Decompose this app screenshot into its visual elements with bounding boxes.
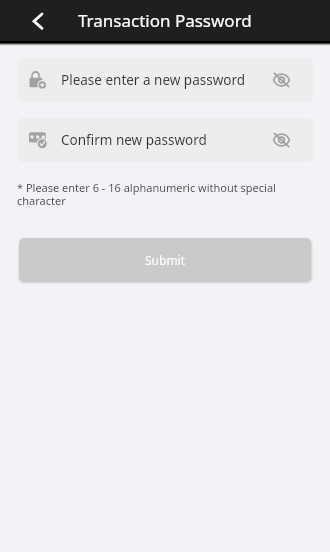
staticText: Transaction Password (78, 9, 252, 32)
staticText: Please enter a new password (61, 71, 246, 89)
staticText: Confirm new password (61, 131, 207, 149)
button[interactable]: Submit (19, 238, 311, 282)
button[interactable]: Show confirmed password (259, 118, 303, 162)
button[interactable]: Confirm new password (17, 118, 313, 162)
button[interactable]: Please enter a new password (17, 58, 313, 102)
button[interactable]: Show new password (259, 58, 303, 102)
button[interactable]: Back (0, 0, 56, 41)
staticText: * Please enter 6 - 16 alphanumeric witho… (17, 180, 292, 208)
staticText: Submit (145, 252, 186, 268)
